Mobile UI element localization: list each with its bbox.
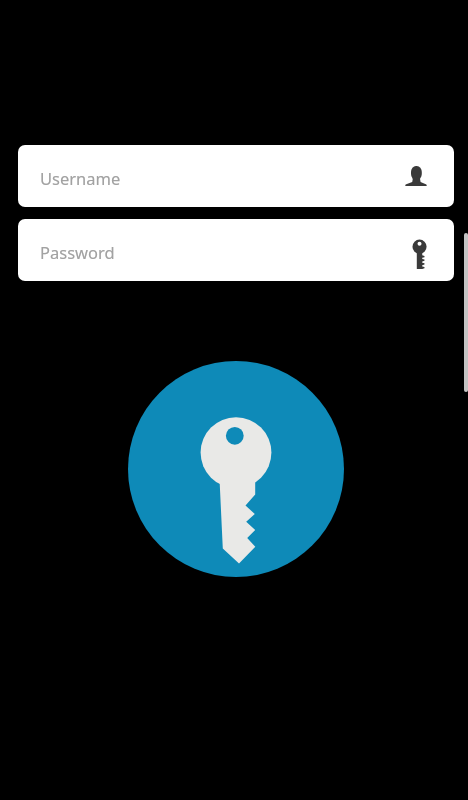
button[interactable]: Sign in xyxy=(128,361,344,577)
button[interactable]: Password xyxy=(18,219,454,281)
staticText: Password xyxy=(40,241,115,263)
staticText: Username xyxy=(40,167,121,189)
other: Password xyxy=(412,239,428,270)
button[interactable]: Username xyxy=(18,145,454,207)
other: Account xyxy=(406,166,426,186)
